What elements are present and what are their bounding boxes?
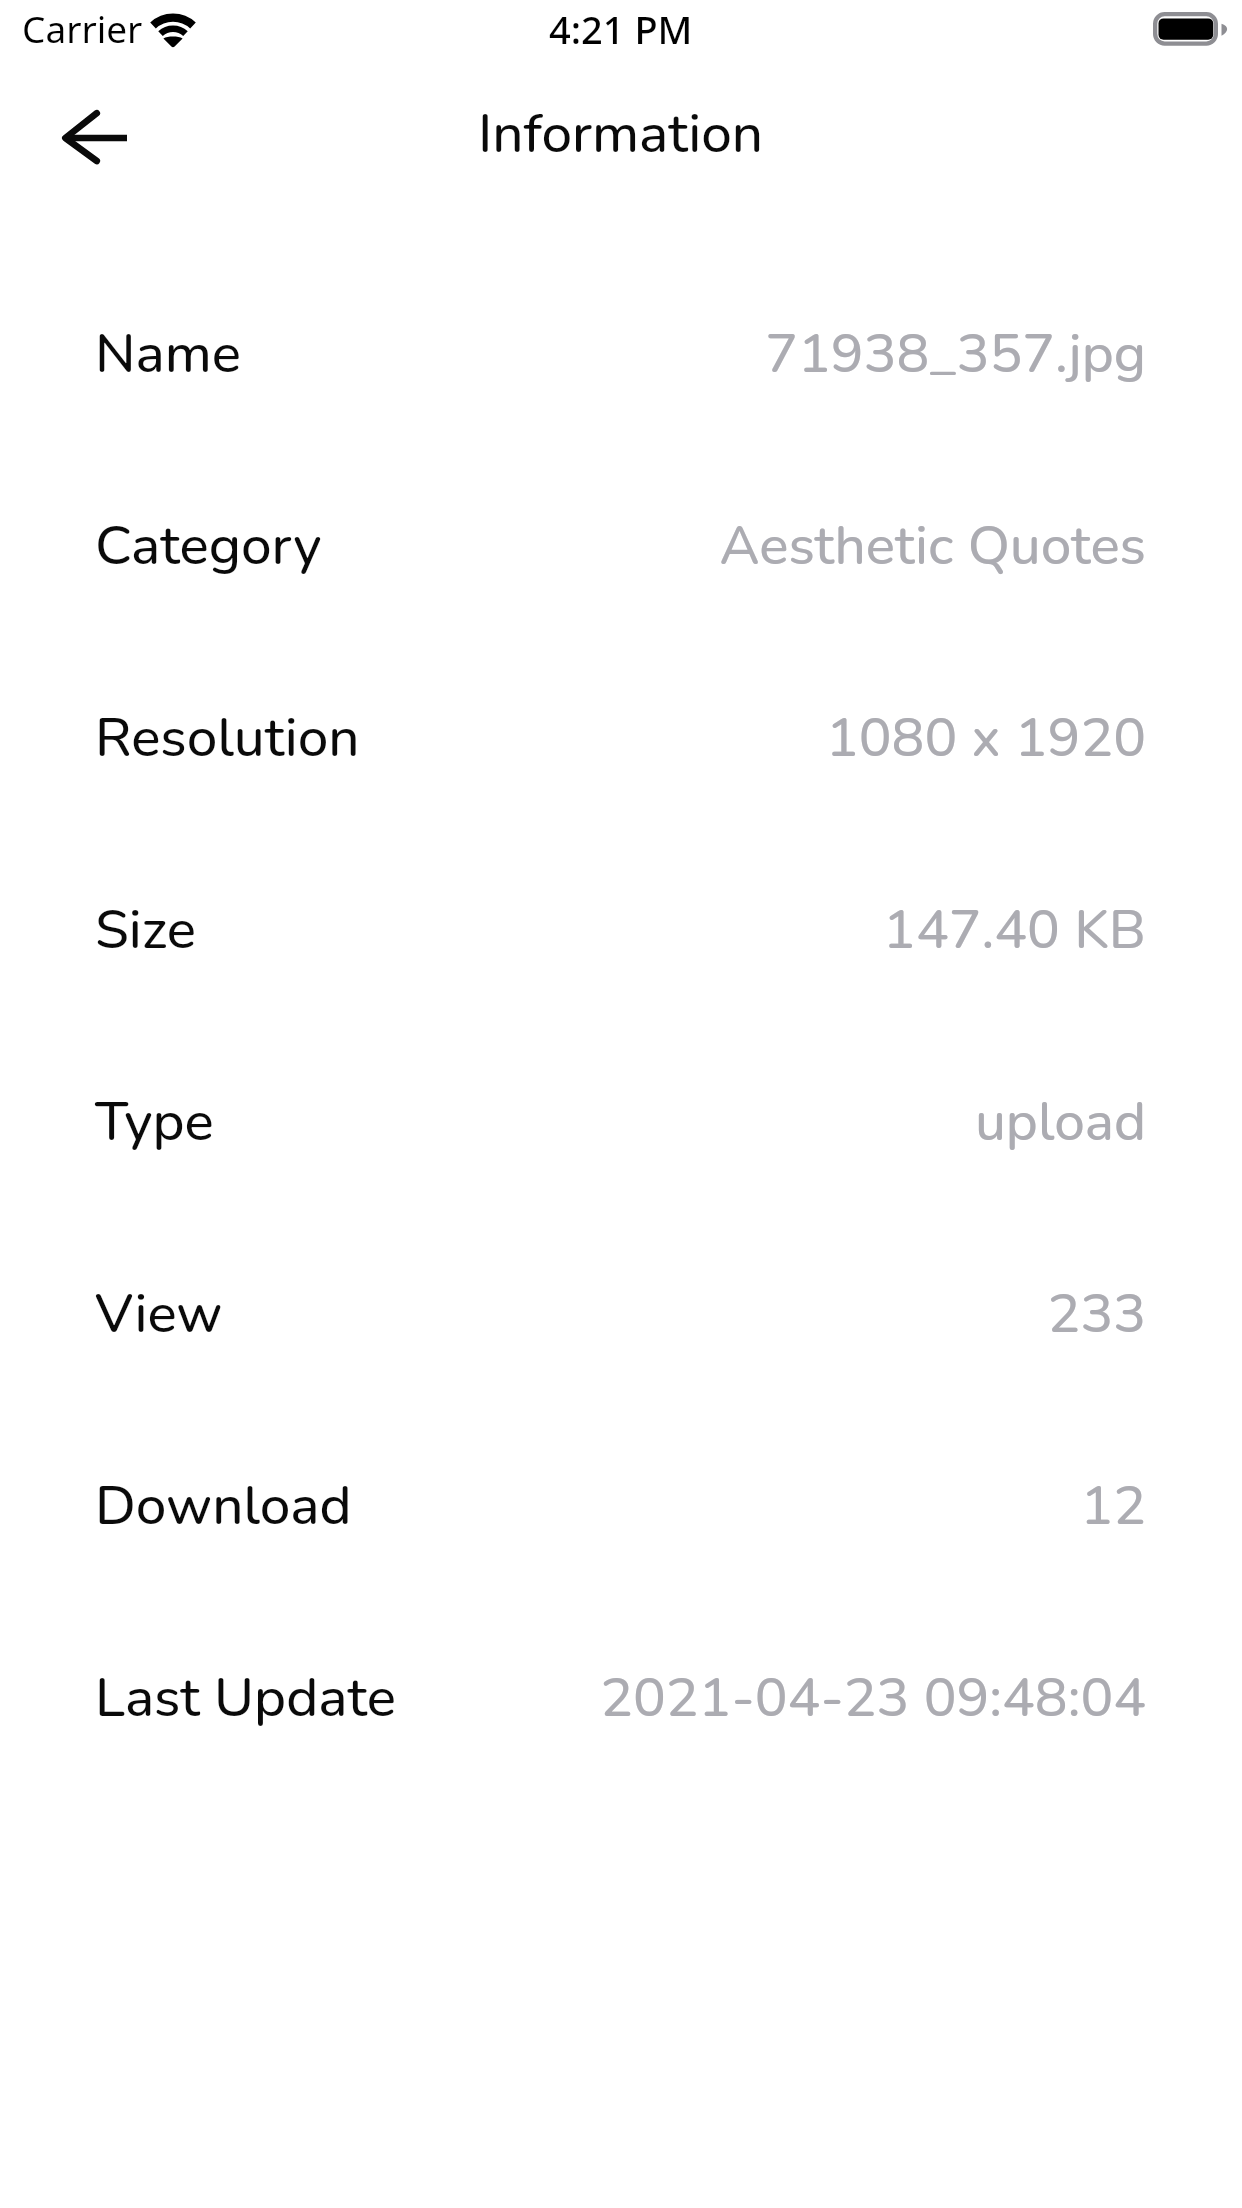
- button[interactable]: Type: [0, 1026, 1242, 1218]
- staticText: Name: [95, 317, 241, 392]
- staticText: Resolution: [95, 701, 360, 776]
- button[interactable]: View: [0, 1218, 1242, 1410]
- staticText: Carrier: [22, 3, 143, 53]
- staticText: Download: [95, 1469, 352, 1544]
- staticText: Category: [95, 509, 322, 584]
- staticText: 2021-04-23 09:48:04: [600, 1661, 1146, 1736]
- staticText: 12: [1080, 1469, 1146, 1544]
- button[interactable]: Resolution: [0, 642, 1242, 834]
- staticText: Information: [478, 97, 764, 172]
- button[interactable]: Category: [0, 450, 1242, 642]
- button[interactable]: Last Update: [0, 1602, 1242, 1794]
- staticText: Last Update: [95, 1661, 396, 1736]
- staticText: 71938_357.jpg: [765, 317, 1146, 392]
- button[interactable]: Back: [43, 84, 151, 192]
- staticText: 1080 x 1920: [825, 701, 1146, 776]
- button[interactable]: Name: [0, 258, 1242, 450]
- staticText: Aesthetic Quotes: [719, 509, 1146, 584]
- staticText: Type: [95, 1085, 214, 1160]
- staticText: View: [95, 1277, 223, 1352]
- button[interactable]: Size: [0, 834, 1242, 1026]
- staticText: 147.40 KB: [883, 893, 1146, 968]
- staticText: 4:21 PM: [549, 3, 693, 55]
- staticText: upload: [974, 1085, 1146, 1160]
- button[interactable]: Download: [0, 1410, 1242, 1602]
- staticText: 233: [1047, 1277, 1146, 1352]
- staticText: Size: [95, 893, 196, 968]
